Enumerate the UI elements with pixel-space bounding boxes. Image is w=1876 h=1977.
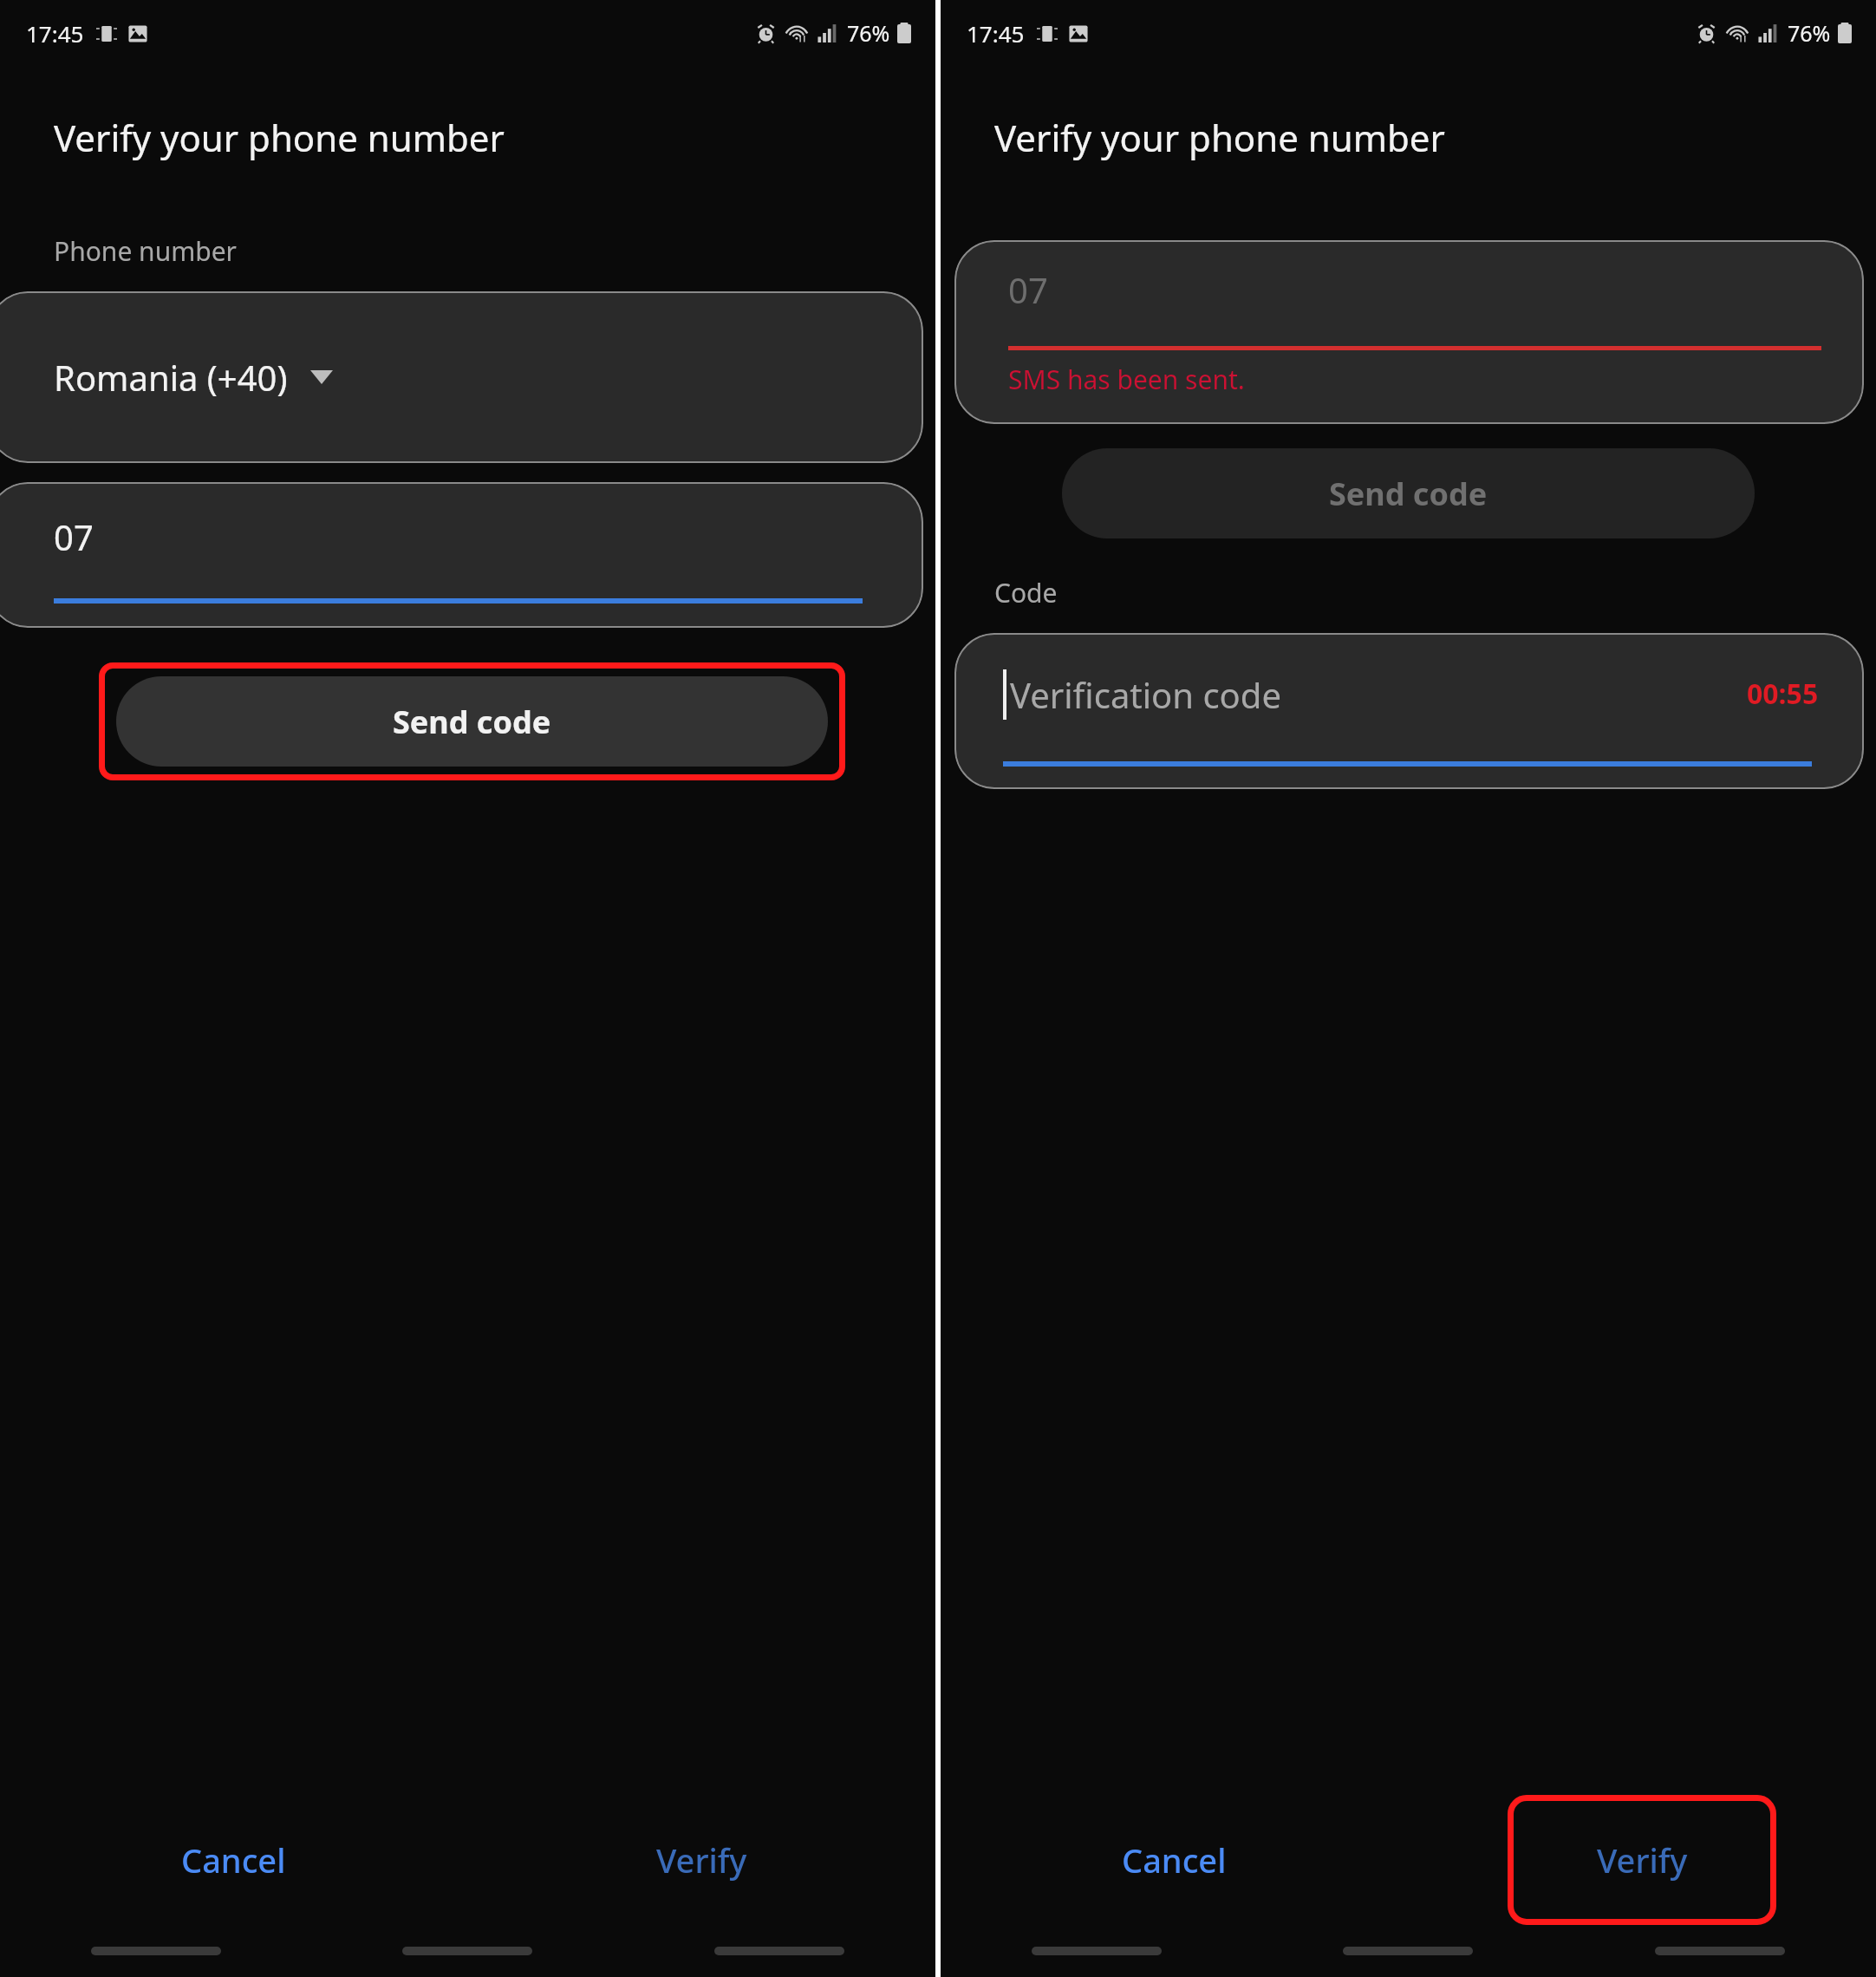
button[interactable]: Send code	[116, 676, 828, 767]
staticText: 07	[1008, 266, 1048, 313]
staticText: 76%	[1788, 18, 1831, 48]
button[interactable]	[0, 482, 935, 628]
staticText: Send code	[1329, 473, 1488, 515]
button[interactable]	[954, 633, 1864, 789]
button[interactable]: Cancel	[941, 1795, 1408, 1925]
button[interactable]: Cancel	[0, 1795, 467, 1925]
button[interactable]: Send code	[1062, 448, 1755, 538]
staticText: Verify your phone number	[54, 113, 505, 162]
button[interactable]: Verify	[1508, 1795, 1776, 1925]
staticText: SMS has been sent.	[1008, 362, 1245, 397]
staticText: Verify	[656, 1837, 747, 1882]
staticText: 76%	[847, 18, 890, 48]
staticText: Send code	[393, 701, 551, 743]
button[interactable]	[0, 291, 935, 463]
staticText: Verify your phone number	[994, 113, 1445, 162]
staticText: 07	[54, 513, 94, 560]
staticText: 17:45	[967, 18, 1025, 49]
staticText: Cancel	[181, 1837, 286, 1882]
staticText: Code	[994, 575, 1058, 610]
staticText: 17:45	[26, 18, 84, 49]
staticText: Cancel	[1122, 1837, 1227, 1882]
button[interactable]: Verify	[567, 1795, 836, 1925]
staticText: 00:55	[1747, 675, 1819, 713]
staticText: Verification code	[1010, 671, 1281, 718]
staticText: Romania (+40)	[54, 354, 288, 401]
staticText: Phone number	[54, 233, 237, 269]
staticText: Verify	[1597, 1837, 1688, 1882]
button[interactable]	[954, 240, 1864, 424]
